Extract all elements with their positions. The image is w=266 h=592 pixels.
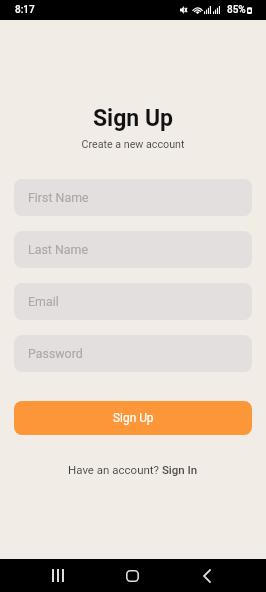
staticText: Last Name (28, 242, 88, 257)
button[interactable]: Sign Up (14, 401, 252, 435)
staticText: First Name (28, 190, 89, 205)
staticText: Email (28, 294, 59, 309)
button[interactable]: Email (14, 283, 252, 320)
button[interactable]: First Name (14, 179, 252, 216)
button[interactable]: Have an account? Sign In (68, 463, 198, 476)
button[interactable]: Home (108, 559, 157, 592)
staticText: Have an account? Sign In (68, 463, 198, 476)
button[interactable]: Last Name (14, 231, 252, 268)
staticText: 8:17 (15, 4, 35, 16)
staticText: Sign Up (0, 105, 266, 132)
staticText: Sign Up (113, 411, 154, 425)
button[interactable]: Recent apps (33, 559, 82, 592)
button[interactable]: Back (182, 559, 231, 592)
staticText: 85% (227, 4, 246, 16)
staticText: Create a new account (0, 138, 266, 151)
staticText: Password (28, 346, 83, 361)
button[interactable]: Password (14, 335, 252, 372)
